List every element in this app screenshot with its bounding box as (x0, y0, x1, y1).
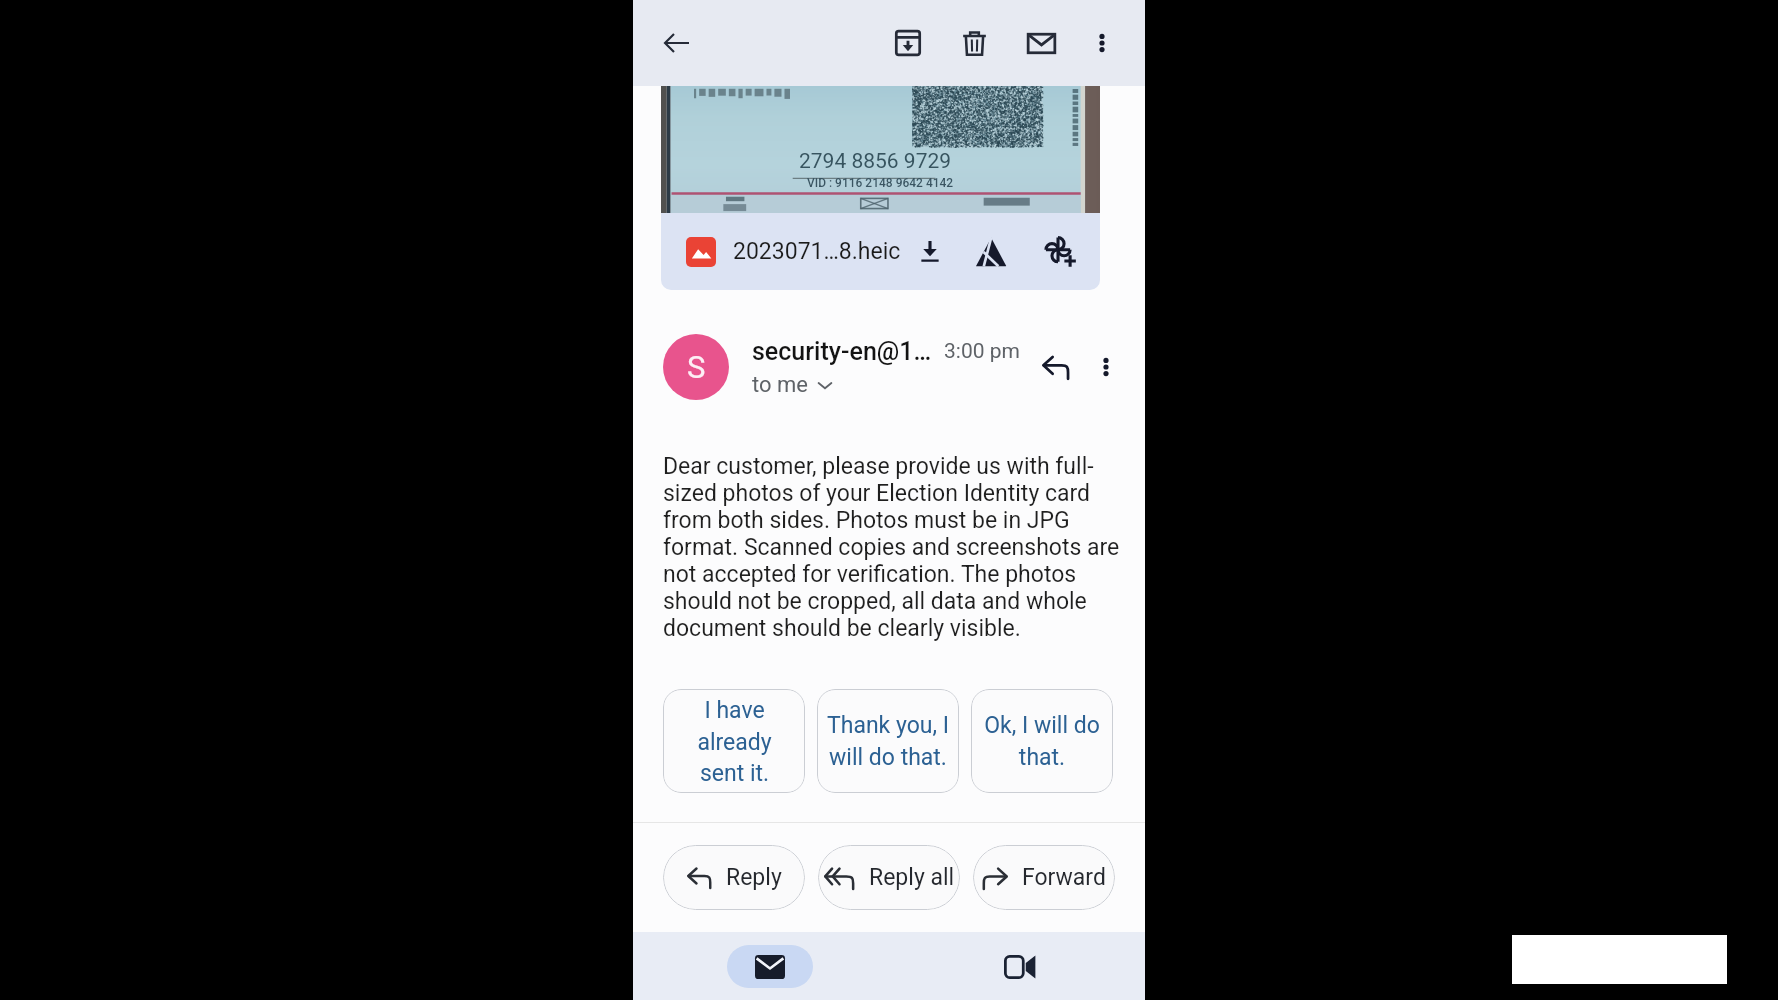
button[interactable]: Back (653, 19, 701, 67)
button[interactable]: More options (1080, 21, 1124, 65)
button[interactable]: to me (752, 372, 833, 398)
button[interactable]: Save to Drive (970, 231, 1012, 273)
button[interactable]: Save to Photos (1039, 231, 1081, 273)
staticText: to me (752, 372, 808, 398)
button[interactable]: Download (909, 231, 951, 273)
button[interactable]: Reply all (818, 845, 960, 910)
staticText: Ok, I will do that. (984, 712, 1100, 770)
staticText: Reply all (869, 864, 955, 891)
button[interactable]: Forward (973, 845, 1115, 910)
button[interactable]: Ok, I will do that. (971, 689, 1113, 793)
button[interactable]: Delete (950, 19, 998, 67)
button[interactable]: Sender avatar (663, 334, 729, 400)
staticText: 3:00 pm (944, 339, 1020, 364)
button[interactable]: Mail (727, 945, 813, 988)
staticText: Thank you, I will do that. (827, 712, 949, 770)
button[interactable]: Meet (977, 945, 1063, 988)
staticText: security-en@1… (752, 337, 932, 366)
staticText: Forward (1022, 864, 1106, 891)
staticText: 2023071…8.heic (733, 238, 901, 265)
staticText: I have already sent it. (697, 697, 772, 786)
button[interactable]: 2023071…8.heic (661, 213, 1100, 290)
staticText: VID : 9116 2148 9642 4142 (807, 176, 954, 190)
button[interactable]: I have already sent it. (663, 689, 805, 793)
staticText: Dear customer, please provide us with fu… (663, 453, 1125, 642)
staticText: Reply (726, 864, 782, 891)
staticText: 2794 8856 9729 (799, 149, 952, 174)
button[interactable]: Mark as unread (1017, 19, 1065, 67)
button[interactable]: Attachment preview (661, 86, 1100, 213)
button[interactable]: Reply (663, 845, 805, 910)
button[interactable]: Archive (884, 19, 932, 67)
staticText: S (687, 349, 706, 385)
button[interactable]: Thank you, I will do that. (817, 689, 959, 793)
button[interactable]: Reply (1033, 344, 1079, 390)
button[interactable]: More options (1083, 344, 1129, 390)
